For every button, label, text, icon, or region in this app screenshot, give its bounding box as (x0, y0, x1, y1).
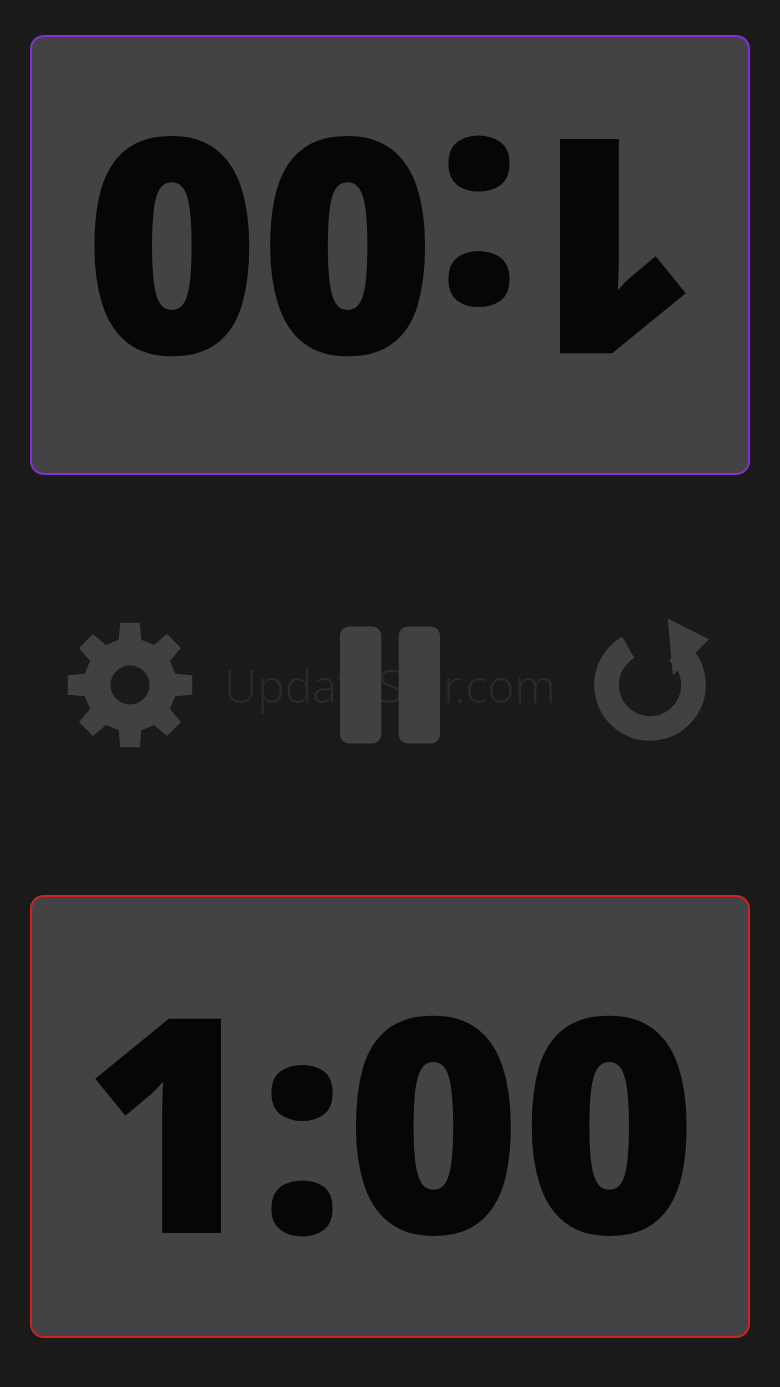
button[interactable]: Settings (0, 597, 260, 773)
button[interactable]: 1:00 (30, 895, 750, 1338)
staticText: 1:00 (83, 912, 698, 1321)
button[interactable]: Pause (260, 597, 520, 773)
staticText: 1:00 (83, 51, 698, 460)
staticText: UpdateStar.com (224, 654, 556, 717)
button[interactable]: Reset (520, 597, 780, 773)
button[interactable]: 1:00 (30, 35, 750, 475)
